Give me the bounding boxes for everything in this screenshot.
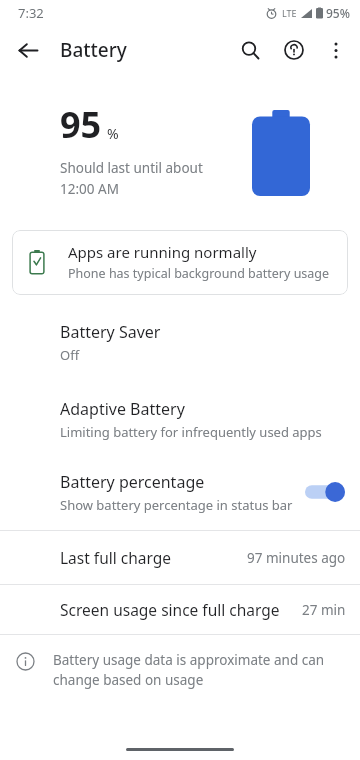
staticText: Screen usage since full charge bbox=[60, 599, 280, 620]
button[interactable]: Back bbox=[6, 28, 50, 72]
button[interactable]: Search bbox=[228, 28, 272, 72]
staticText: Apps are running normally bbox=[68, 242, 257, 262]
staticText: Adaptive Battery bbox=[60, 398, 185, 420]
staticText: 12:00 AM bbox=[60, 180, 119, 198]
staticText: Battery bbox=[60, 37, 127, 63]
staticText: Show battery percentage in status bar bbox=[60, 496, 293, 514]
button[interactable]: Screen usage since full charge bbox=[0, 585, 360, 634]
staticText: 95 bbox=[60, 100, 102, 149]
staticText: 27 min bbox=[302, 601, 346, 619]
button[interactable]: Apps are running normally bbox=[12, 230, 348, 295]
button[interactable]: More options bbox=[316, 30, 356, 70]
staticText: Battery usage data is approximate and ca… bbox=[53, 651, 332, 689]
staticText: % bbox=[107, 124, 119, 143]
staticText: Battery Saver bbox=[60, 321, 161, 343]
staticText: Battery percentage bbox=[60, 471, 205, 493]
staticText: Last full charge bbox=[60, 547, 172, 568]
staticText: Phone has typical background battery usa… bbox=[68, 265, 330, 282]
staticText: 95% bbox=[326, 5, 350, 21]
button[interactable]: Help bbox=[272, 28, 316, 72]
staticText: Should last until about bbox=[60, 159, 203, 177]
button[interactable]: Battery percentage toggle bbox=[304, 479, 346, 505]
button[interactable]: Battery Saver bbox=[0, 315, 360, 376]
staticText: LTE bbox=[282, 7, 297, 19]
staticText: Off bbox=[60, 346, 80, 364]
staticText: 97 minutes ago bbox=[247, 549, 346, 567]
button[interactable]: Battery percentage bbox=[0, 469, 360, 522]
button[interactable]: Last full charge bbox=[0, 531, 360, 584]
staticText: Limiting battery for infrequently used a… bbox=[60, 423, 322, 441]
staticText: 7:32 bbox=[18, 4, 44, 22]
button[interactable]: Adaptive Battery bbox=[0, 398, 360, 451]
